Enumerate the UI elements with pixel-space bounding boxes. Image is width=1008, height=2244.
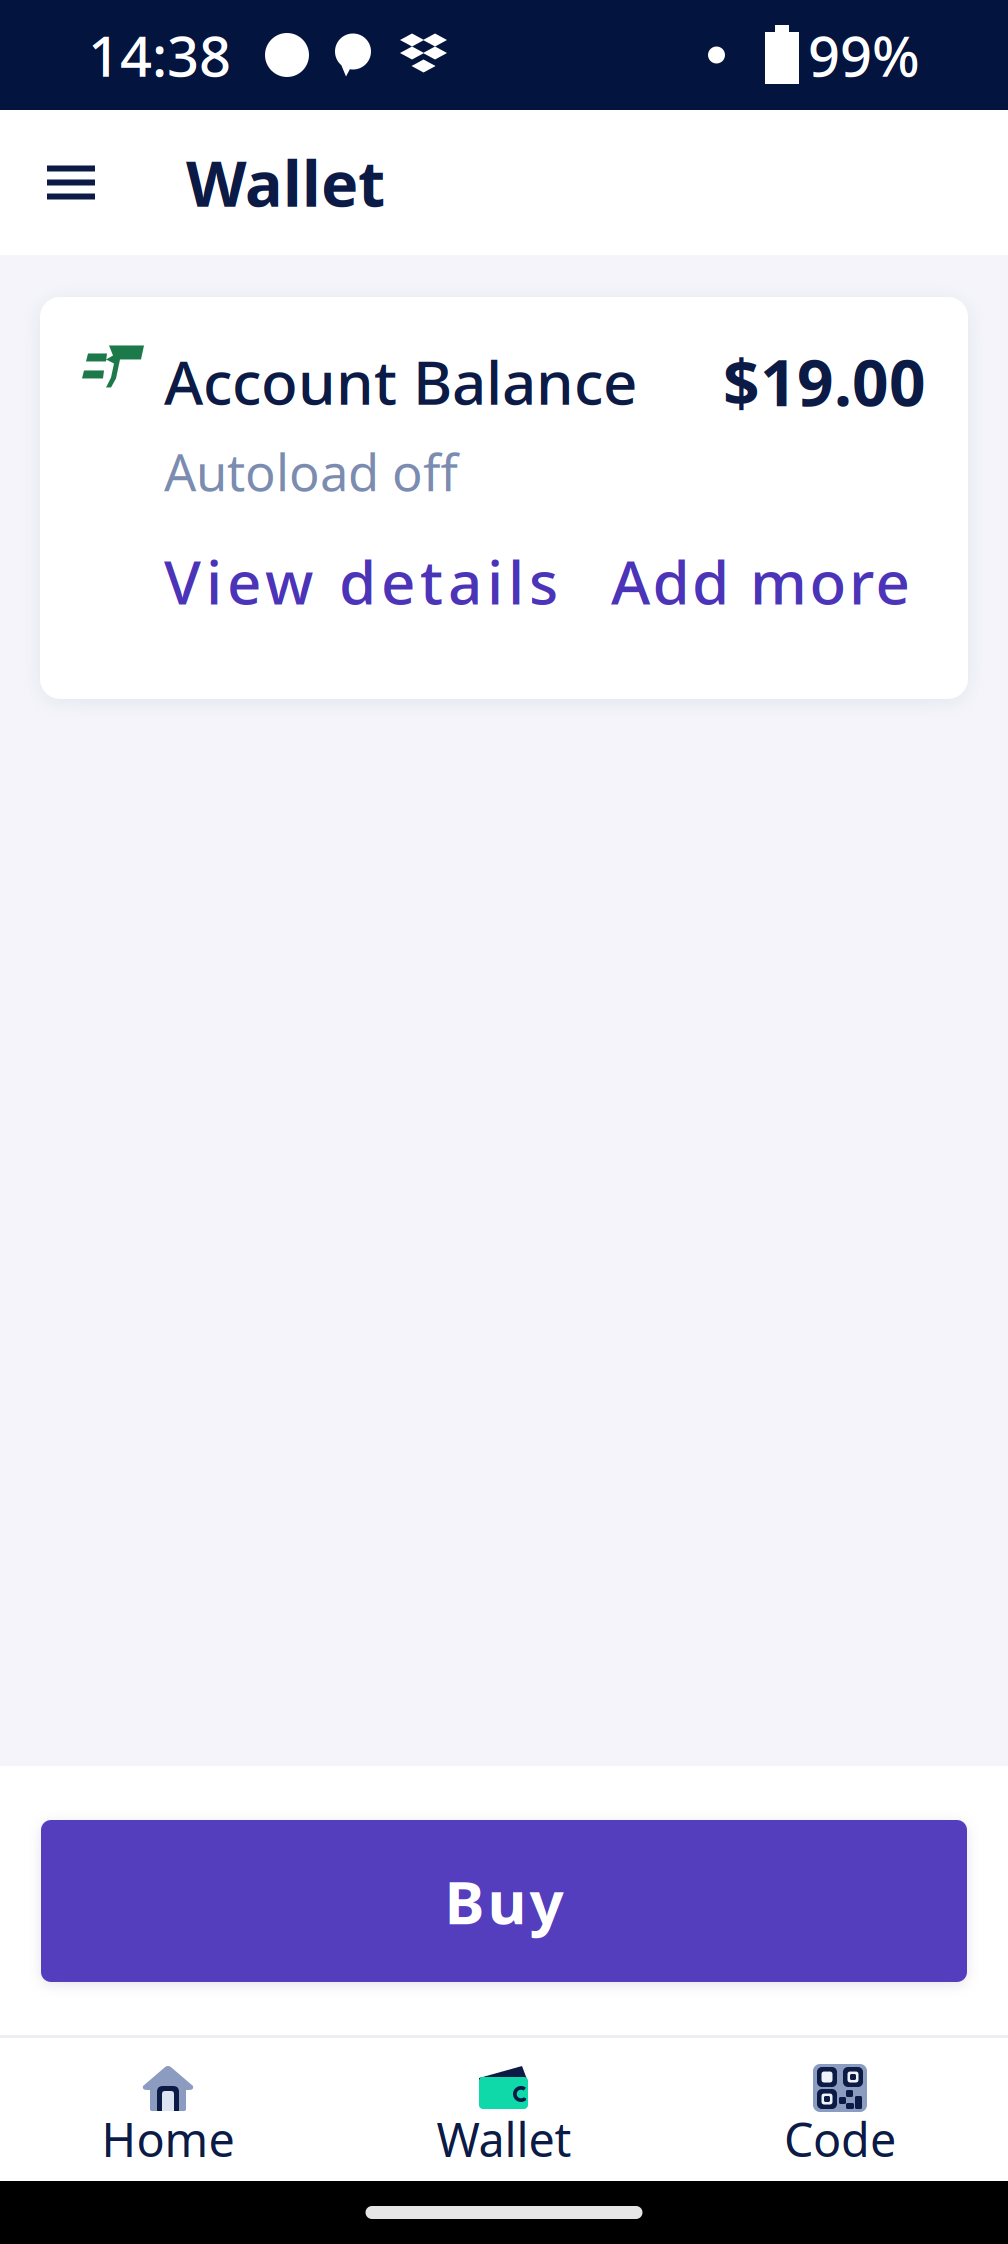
staticText: Buy (444, 1861, 563, 1941)
staticText: Add more (611, 541, 909, 621)
button[interactable]: Wallet (336, 2038, 672, 2181)
staticText: Account Balance (164, 342, 637, 421)
button[interactable]: Buy (41, 1820, 967, 1982)
staticText: Wallet (436, 2108, 571, 2170)
staticText: Wallet (186, 141, 385, 224)
button[interactable]: Menu (0, 110, 186, 254)
staticText: Autoload off (164, 438, 458, 505)
staticText: Code (784, 2108, 896, 2170)
button[interactable]: Home (0, 2038, 336, 2181)
button[interactable]: Add more (611, 541, 909, 621)
button[interactable]: Code (672, 2038, 1008, 2181)
staticText: $19.00 (723, 339, 926, 424)
button[interactable]: View details (164, 541, 558, 621)
staticText: View details (164, 541, 558, 621)
staticText: 99% (808, 18, 920, 92)
staticText: 14:38 (88, 18, 231, 92)
staticText: Home (101, 2108, 234, 2170)
